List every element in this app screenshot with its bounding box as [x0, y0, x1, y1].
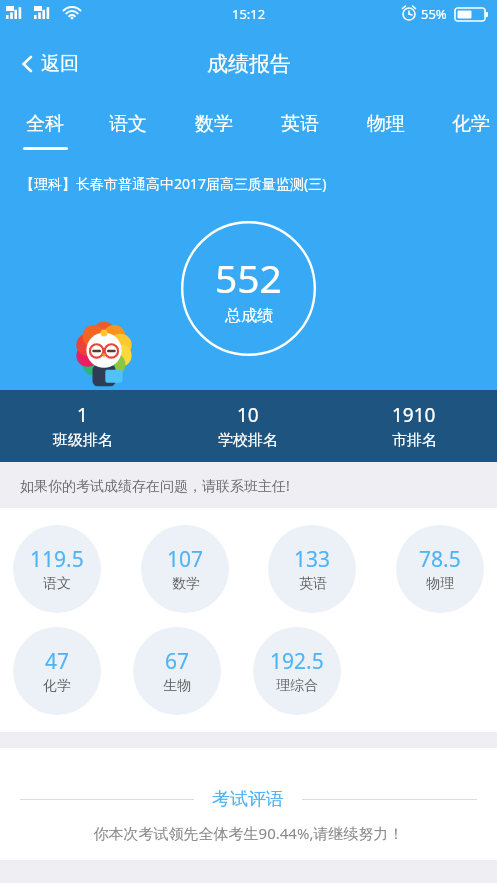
staticText: 107	[167, 545, 204, 574]
button[interactable]: 语文	[92, 100, 164, 158]
staticText: 理综合	[276, 677, 318, 695]
staticText: 考试评语	[212, 788, 284, 811]
button[interactable]: 物理	[350, 100, 422, 158]
staticText: 总成绩	[225, 306, 273, 326]
button[interactable]: 67	[133, 627, 221, 715]
button[interactable]: 返回	[14, 46, 85, 82]
button[interactable]: 1910	[331, 390, 497, 462]
staticText: 55%	[421, 5, 447, 23]
staticText: 78.5	[419, 545, 461, 574]
staticText: 成绩报告	[207, 51, 291, 77]
staticText: 119.5	[30, 545, 84, 574]
button[interactable]: 1	[0, 390, 165, 462]
staticText: 如果你的考试成绩存在问题，请联系班主任!	[20, 476, 290, 495]
button[interactable]: 英语	[264, 100, 336, 158]
staticText: 47	[45, 647, 70, 676]
button[interactable]: 107	[141, 525, 229, 613]
button[interactable]: 192.5	[253, 627, 341, 715]
staticText: 市排名	[392, 431, 437, 450]
button[interactable]: 全科	[9, 100, 81, 158]
staticText: 英语	[281, 112, 319, 136]
staticText: 物理	[426, 575, 454, 593]
staticText: 【理科】长春市普通高中2017届高三质量监测(三)	[20, 174, 327, 193]
staticText: 语文	[109, 112, 147, 136]
staticText: 15:12	[232, 5, 266, 23]
button[interactable]: 数学	[178, 100, 250, 158]
staticText: 192.5	[270, 647, 324, 676]
button[interactable]: 133	[268, 525, 356, 613]
button[interactable]: 78.5	[396, 525, 484, 613]
staticText: 语文	[43, 575, 71, 593]
button[interactable]: 119.5	[13, 525, 101, 613]
staticText: 生物	[163, 677, 191, 695]
staticText: 数学	[195, 112, 233, 136]
staticText: 10	[237, 402, 259, 428]
staticText: 返回	[41, 52, 79, 76]
button[interactable]: 47	[13, 627, 101, 715]
button[interactable]: 化学	[435, 100, 497, 158]
staticText: 英语	[299, 575, 327, 593]
staticText: 552	[215, 251, 282, 304]
staticText: 化学	[452, 112, 490, 136]
staticText: 1	[77, 402, 88, 428]
staticText: 你本次考试领先全体考生90.44%,请继续努力！	[0, 823, 497, 843]
staticText: 数学	[172, 575, 200, 593]
staticText: 学校排名	[218, 431, 278, 450]
staticText: 1910	[392, 402, 436, 428]
staticText: 133	[294, 545, 331, 574]
staticText: 化学	[43, 677, 71, 695]
staticText: 班级排名	[53, 431, 113, 450]
button[interactable]: 10	[165, 390, 331, 462]
staticText: 全科	[26, 112, 64, 136]
staticText: 物理	[367, 112, 405, 136]
staticText: 67	[165, 647, 190, 676]
